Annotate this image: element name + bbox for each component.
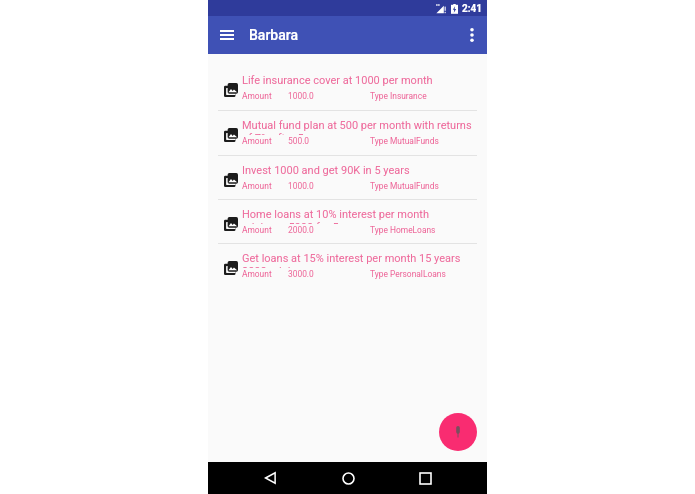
button[interactable]: Back [255, 463, 285, 493]
button[interactable]: More options [458, 21, 486, 49]
staticText: 2000.0 [288, 225, 314, 235]
staticText: Type [370, 225, 388, 235]
button[interactable]: Home loans at 10% interest per month min… [208, 200, 487, 244]
staticText: Insurance [390, 91, 427, 101]
button[interactable]: Home [333, 463, 363, 493]
staticText: Life insurance cover at 1000 per month [242, 74, 433, 87]
staticText: Amount [242, 91, 272, 101]
staticText: 2:41 [462, 3, 483, 15]
staticText: Amount [242, 269, 272, 279]
button[interactable]: Invest 1000 and get 90K in 5 years [208, 156, 487, 200]
staticText: Amount [242, 225, 272, 235]
button[interactable]: Mutual fund plan at 500 per month with r… [208, 111, 487, 156]
staticText: Barbara [249, 27, 298, 43]
button[interactable]: Life insurance cover at 1000 per month [208, 66, 487, 111]
staticText: Type [370, 269, 388, 279]
staticText: Type [370, 181, 388, 191]
staticText: Amount [242, 181, 272, 191]
staticText: HomeLoans [390, 225, 436, 235]
staticText: 1000.0 [288, 91, 314, 101]
staticText: MutualFunds [390, 136, 439, 146]
staticText: 3000.0 [288, 269, 314, 279]
staticText: Type [370, 91, 388, 101]
button[interactable]: Add [439, 413, 477, 451]
staticText: Amount [242, 136, 272, 146]
staticText: Invest 1000 and get 90K in 5 years [242, 164, 410, 177]
button[interactable]: Recent apps [410, 463, 440, 493]
staticText: Get loans at 15% interest per month 15 y… [242, 252, 479, 272]
staticText: Mutual fund plan at 500 per month with r… [242, 119, 479, 139]
staticText: Home loans at 10% interest per month min… [242, 208, 479, 228]
staticText: PersonalLoans [390, 269, 446, 279]
staticText: MutualFunds [390, 181, 439, 191]
staticText: 1000.0 [288, 181, 314, 191]
button[interactable]: Get loans at 15% interest per month 15 y… [208, 244, 487, 288]
staticText: 500.0 [288, 136, 310, 146]
button[interactable]: Open navigation drawer [213, 21, 241, 49]
staticText: Type [370, 136, 388, 146]
